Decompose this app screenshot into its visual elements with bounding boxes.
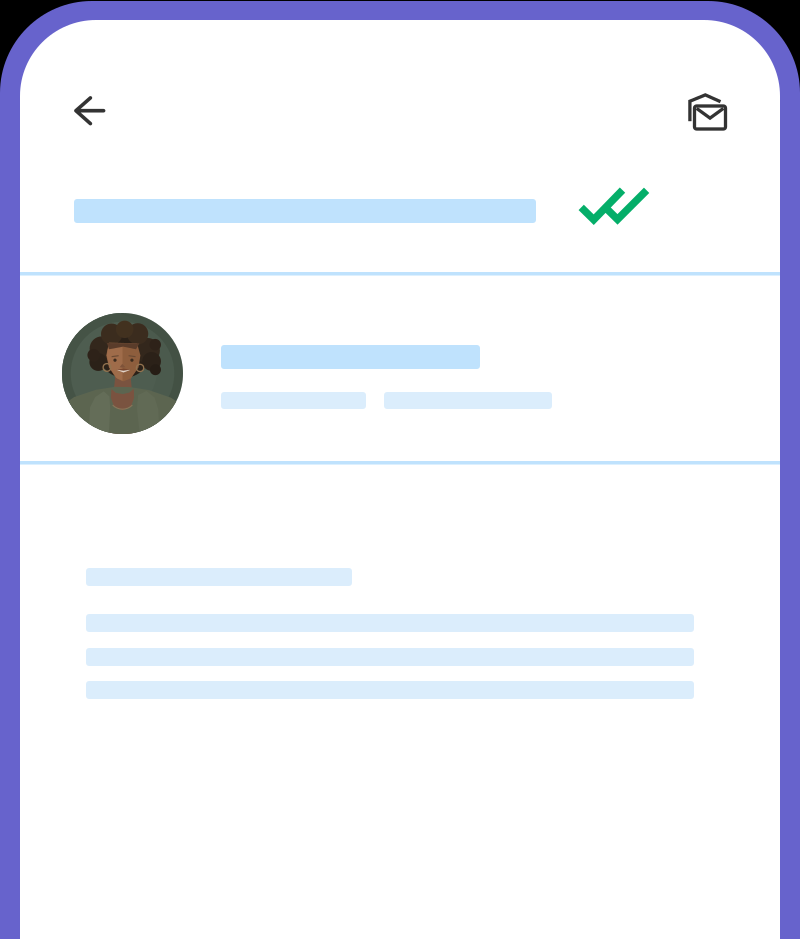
button[interactable]: Mail bbox=[674, 79, 740, 143]
button[interactable]: Subject bbox=[20, 164, 780, 272]
button[interactable]: Back bbox=[60, 82, 119, 140]
button[interactable]: Sender bbox=[20, 292, 780, 461]
